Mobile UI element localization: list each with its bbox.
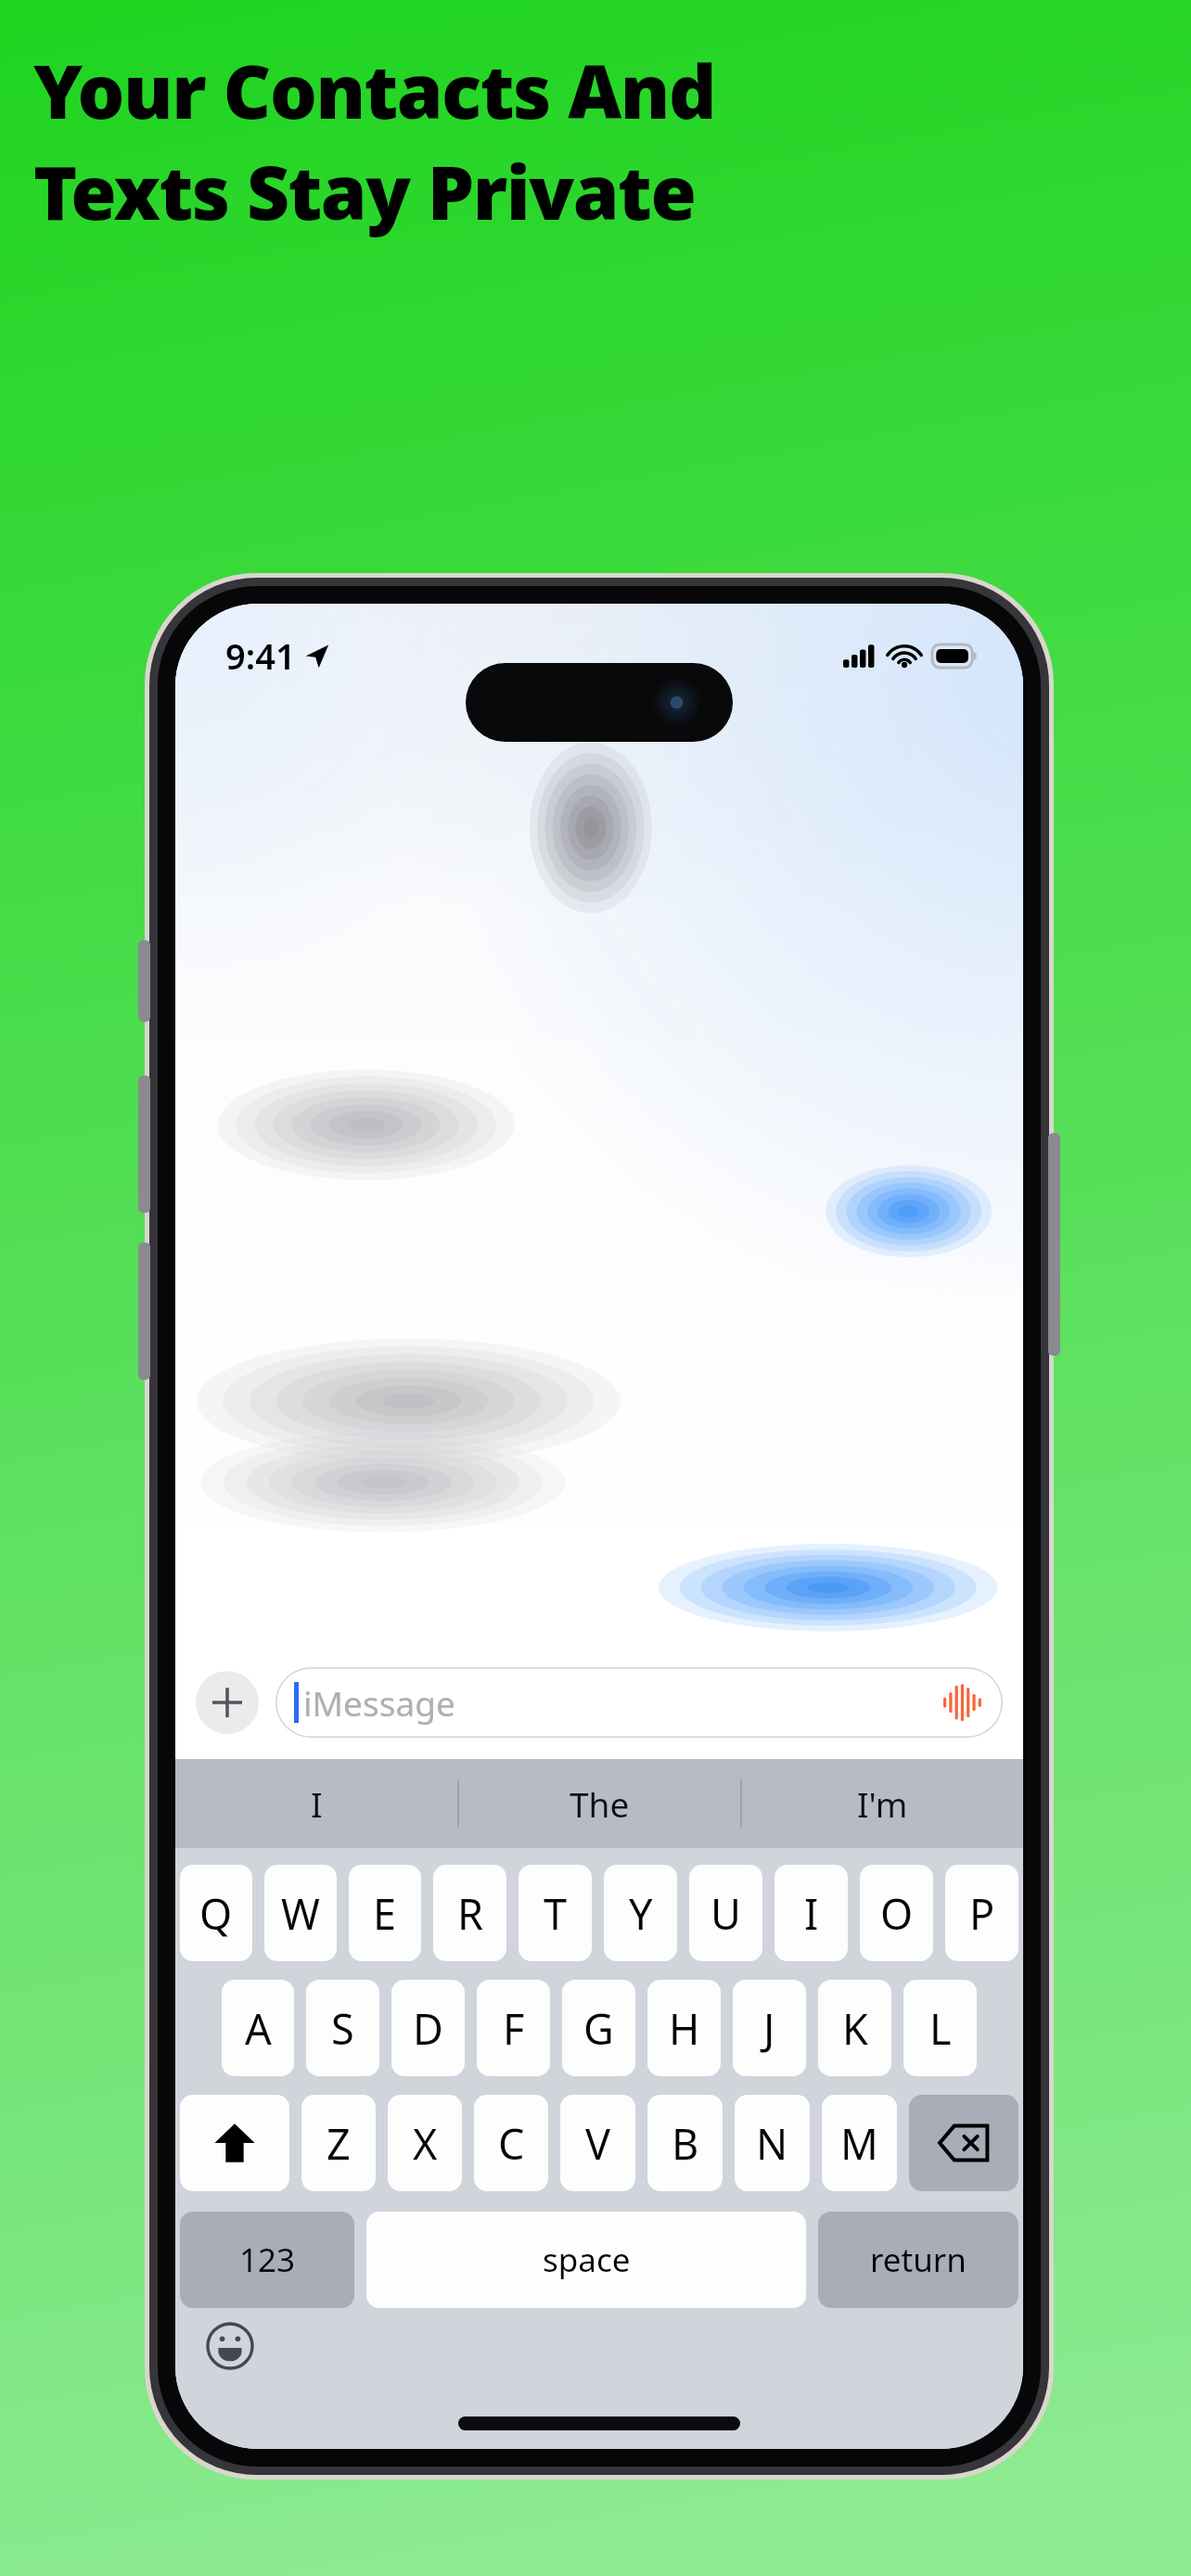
- staticText: D: [413, 2000, 443, 2057]
- staticText: C: [498, 2115, 525, 2172]
- button[interactable]: F: [477, 1980, 550, 2076]
- button[interactable]: Z: [301, 2095, 376, 2191]
- staticText: M: [840, 2115, 878, 2172]
- button[interactable]: E: [349, 1865, 421, 1961]
- button[interactable]: iMessage: [275, 1667, 1003, 1738]
- staticText: R: [457, 1885, 483, 1942]
- button[interactable]: P: [945, 1865, 1018, 1961]
- button[interactable]: Add: [196, 1671, 259, 1734]
- button[interactable]: W: [264, 1865, 337, 1961]
- staticText: 123: [239, 2238, 296, 2282]
- staticText: F: [503, 2000, 525, 2057]
- button[interactable]: G: [562, 1980, 635, 2076]
- button[interactable]: M: [822, 2095, 897, 2191]
- button[interactable]: Y: [604, 1865, 677, 1961]
- staticText: L: [929, 2000, 952, 2057]
- button[interactable]: C: [474, 2095, 548, 2191]
- other: Volume down: [138, 1243, 150, 1380]
- staticText: 9:41: [225, 631, 296, 680]
- button[interactable]: H: [647, 1980, 721, 2076]
- button[interactable]: Q: [180, 1865, 252, 1961]
- button[interactable]: X: [388, 2095, 462, 2191]
- staticText: T: [544, 1885, 568, 1942]
- button[interactable]: D: [391, 1980, 465, 2076]
- staticText: return: [870, 2238, 967, 2282]
- button[interactable]: K: [818, 1980, 891, 2076]
- staticText: G: [583, 2000, 614, 2057]
- staticText: K: [842, 2000, 868, 2057]
- staticText: The: [570, 1780, 630, 1827]
- staticText: I: [804, 1885, 819, 1942]
- other: Volume up: [138, 1076, 150, 1213]
- staticText: A: [245, 2000, 272, 2057]
- staticText: Z: [327, 2115, 351, 2172]
- button[interactable]: Backspace: [909, 2095, 1018, 2191]
- button[interactable]: N: [735, 2095, 810, 2191]
- staticText: I'm: [857, 1780, 908, 1827]
- staticText: W: [281, 1885, 320, 1942]
- staticText: X: [413, 2115, 438, 2172]
- button[interactable]: 123: [180, 2212, 354, 2308]
- staticText: H: [669, 2000, 700, 2057]
- button[interactable]: The: [459, 1759, 740, 1848]
- button[interactable]: J: [733, 1980, 806, 2076]
- button[interactable]: space: [366, 2212, 806, 2308]
- button[interactable]: I: [775, 1865, 848, 1961]
- button[interactable]: O: [860, 1865, 933, 1961]
- button[interactable]: B: [647, 2095, 723, 2191]
- staticText: U: [711, 1885, 741, 1942]
- other: Ring silent switch: [138, 940, 150, 1022]
- staticText: Q: [199, 1885, 233, 1942]
- button[interactable]: T: [519, 1865, 592, 1961]
- button[interactable]: L: [903, 1980, 977, 2076]
- button[interactable]: V: [560, 2095, 635, 2191]
- button[interactable]: Shift: [180, 2095, 289, 2191]
- staticText: E: [373, 1885, 397, 1942]
- staticText: N: [756, 2115, 788, 2172]
- button[interactable]: R: [433, 1865, 506, 1961]
- button[interactable]: A: [222, 1980, 294, 2076]
- button[interactable]: return: [818, 2212, 1018, 2308]
- staticText: Your Contacts And: [33, 39, 715, 140]
- staticText: B: [672, 2115, 699, 2172]
- staticText: P: [969, 1885, 995, 1942]
- button[interactable]: I: [175, 1759, 457, 1848]
- button[interactable]: I'm: [742, 1759, 1023, 1848]
- button[interactable]: U: [689, 1865, 762, 1961]
- staticText: O: [880, 1885, 914, 1942]
- button[interactable]: S: [306, 1980, 379, 2076]
- staticText: Texts Stay Private: [33, 140, 696, 241]
- staticText: J: [763, 2000, 775, 2057]
- staticText: space: [543, 2238, 631, 2282]
- staticText: I: [311, 1780, 323, 1827]
- staticText: iMessage: [303, 1679, 455, 1726]
- button[interactable]: Emoji: [203, 2319, 257, 2373]
- other: Side button: [1048, 1133, 1060, 1356]
- staticText: V: [585, 2115, 611, 2172]
- staticText: Y: [629, 1885, 653, 1942]
- staticText: S: [331, 2000, 354, 2057]
